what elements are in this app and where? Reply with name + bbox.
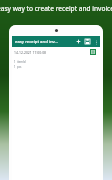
button[interactable]: More options [92, 38, 100, 46]
button[interactable]: 14-12-2021 17:00:08 [12, 47, 100, 57]
button[interactable]: Add [74, 37, 83, 46]
staticText: easy way to create receipt and invoice [0, 4, 109, 13]
staticText: 14-12-2021 17:00:08 [14, 50, 90, 55]
staticText: easy receipt and inv… [15, 39, 74, 45]
staticText: 1 pcs [14, 65, 22, 69]
button[interactable]: Save [83, 37, 92, 46]
staticText: 1 item(s) [14, 60, 26, 64]
